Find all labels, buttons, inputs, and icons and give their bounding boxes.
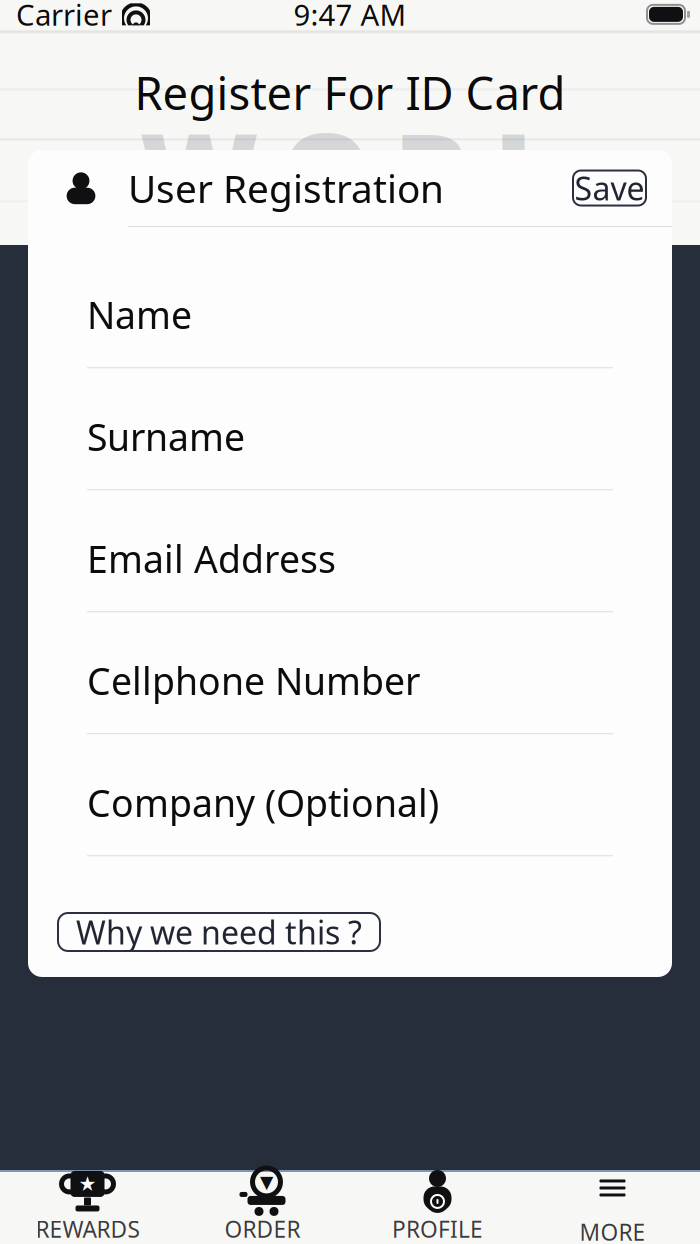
staticText: Save: [574, 167, 644, 209]
staticText: O: [280, 96, 371, 249]
staticText: Register For ID Card: [134, 62, 565, 123]
button[interactable]: MORE: [525, 1171, 700, 1244]
staticText: Cellphone Number: [87, 656, 420, 705]
staticText: REWARDS: [35, 1214, 139, 1244]
button[interactable]: PROFILE: [350, 1171, 525, 1244]
staticText: L: [493, 96, 560, 249]
button[interactable]: ★: [0, 1171, 175, 1244]
staticText: W: [139, 96, 258, 249]
staticText: ★: [78, 1173, 96, 1195]
staticText: 9:47 AM: [293, 0, 406, 34]
staticText: Email Address: [87, 534, 336, 583]
staticText: R: [393, 96, 471, 249]
staticText: User Registration: [128, 162, 444, 214]
staticText: Carrier: [16, 0, 112, 34]
button[interactable]: ▼: [175, 1171, 350, 1244]
staticText: MORE: [579, 1217, 645, 1244]
staticText: PROFILE: [392, 1214, 483, 1244]
staticText: Name: [87, 290, 192, 339]
button[interactable]: Save: [573, 170, 646, 205]
staticText: ORDER: [224, 1214, 300, 1244]
staticText: ▼: [260, 1172, 273, 1192]
staticText: Surname: [87, 412, 245, 461]
button[interactable]: Why we need this ?: [58, 913, 380, 951]
staticText: Company (Optional): [87, 778, 439, 827]
staticText: Why we need this ?: [76, 911, 362, 953]
